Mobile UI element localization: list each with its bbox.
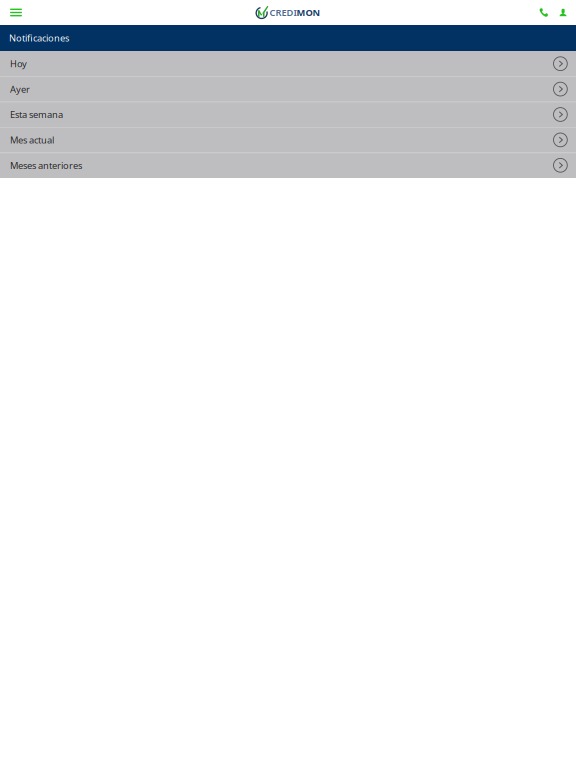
button[interactable]: Meses anteriores: [0, 153, 576, 178]
button[interactable]: Esta semana: [0, 102, 576, 127]
staticText: Esta semana: [10, 108, 63, 121]
button[interactable]: Hoy: [0, 51, 576, 76]
staticText: Notificaciones: [9, 32, 69, 44]
button[interactable]: Account: [558, 0, 576, 25]
staticText: Mes actual: [10, 134, 54, 146]
staticText: Ayer: [10, 83, 30, 95]
staticText: Meses anteriores: [10, 159, 82, 171]
button[interactable]: Call: [530, 0, 558, 25]
staticText: Hoy: [10, 57, 27, 70]
staticText: CREDI: [270, 6, 297, 19]
staticText: MON: [297, 6, 321, 19]
button[interactable]: Mes actual: [0, 127, 576, 153]
button[interactable]: Ayer: [0, 76, 576, 102]
button[interactable]: Menu: [0, 0, 28, 25]
